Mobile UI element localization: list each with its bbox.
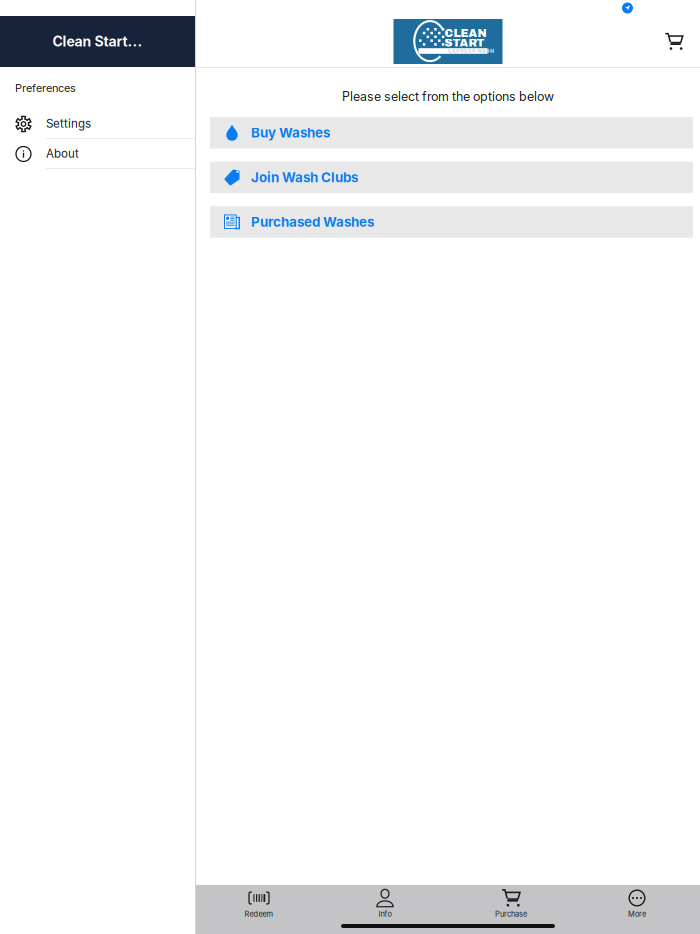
staticText: CLEAN [444, 27, 486, 39]
button[interactable]: Buy Washes [210, 117, 693, 148]
staticText: Clean Start... [52, 33, 142, 50]
staticText: Info [378, 909, 391, 918]
button[interactable]: Join Wash Clubs [210, 162, 693, 193]
button[interactable]: Redeem [196, 889, 322, 918]
staticText: Please select from the options below [342, 89, 554, 104]
button[interactable]: Purchased Washes [210, 206, 693, 238]
staticText: About [46, 146, 79, 160]
staticText: Purchase [495, 909, 527, 918]
staticText: START [444, 37, 484, 49]
button[interactable]: Settings [0, 109, 195, 139]
staticText: EXPRESS WASH [448, 48, 494, 54]
button[interactable]: About [0, 139, 195, 169]
button[interactable]: Purchase [448, 889, 574, 918]
staticText: Preferences [15, 81, 76, 95]
staticText: Redeem [244, 909, 273, 918]
staticText: More [628, 909, 646, 918]
button[interactable]: Cart [660, 27, 688, 55]
staticText: Buy Washes [251, 125, 330, 141]
staticText: Join Wash Clubs [251, 169, 358, 185]
staticText: Purchased Washes [251, 214, 374, 230]
button[interactable]: More [574, 889, 700, 918]
button[interactable]: Info [322, 889, 448, 918]
staticText: Settings [46, 116, 91, 130]
